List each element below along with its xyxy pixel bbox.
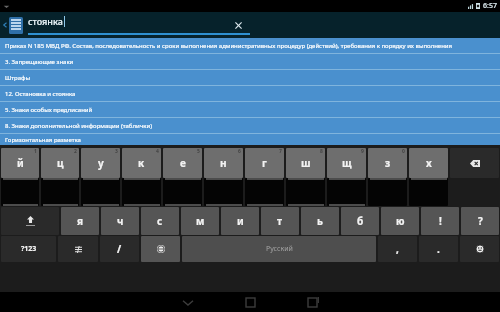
staticText: ц (57, 156, 64, 170)
other: Clear search (233, 20, 244, 31)
button[interactable]: Home (240, 292, 260, 312)
button[interactable]: Change language (141, 236, 180, 262)
button[interactable]: я (61, 207, 99, 235)
staticText: 2 (74, 148, 77, 155)
button[interactable]: 5. Знаки особых предписаний (0, 102, 500, 117)
button[interactable]: App icon (9, 17, 23, 34)
button[interactable]: ч (101, 207, 139, 235)
staticText: 9 (361, 148, 364, 155)
staticText: 3 (115, 148, 118, 155)
button[interactable]: ю (381, 207, 419, 235)
staticText: Приказ N 185 МВД РФ. Состав, последовате… (5, 42, 453, 50)
button[interactable]: б (341, 207, 379, 235)
staticText: стоянка (28, 15, 63, 27)
button[interactable]: ц (41, 148, 79, 178)
button[interactable]: 12. Остановка и стоянка (0, 86, 500, 101)
staticText: 8. Знаки дополнительной информации (табл… (5, 122, 152, 130)
button[interactable]: 3. Запрещающие знаки (0, 54, 500, 69)
button[interactable]: . (419, 236, 458, 262)
button[interactable]: стоянка (28, 15, 250, 35)
staticText: е (180, 156, 186, 170)
button[interactable] (81, 178, 120, 206)
button[interactable]: , (378, 236, 417, 262)
button[interactable]: е (163, 148, 202, 178)
staticText: 6:57 (483, 1, 497, 11)
staticText: к (138, 156, 145, 170)
staticText: з (385, 156, 391, 170)
button[interactable]: г (245, 148, 284, 178)
button[interactable]: с (141, 207, 179, 235)
button[interactable] (286, 178, 325, 206)
button[interactable]: Recent apps (302, 292, 322, 312)
button[interactable]: Shift (1, 207, 59, 235)
button[interactable]: ! (421, 207, 459, 235)
staticText: б (357, 214, 364, 228)
button[interactable]: у (81, 148, 120, 178)
button[interactable]: й (1, 148, 39, 178)
button[interactable] (368, 178, 407, 206)
button[interactable]: Русский (182, 236, 376, 262)
staticText: я (77, 214, 84, 228)
staticText: / (117, 242, 122, 256)
button[interactable]: з (368, 148, 407, 178)
staticText: 3. Запрещающие знаки (5, 58, 74, 66)
button[interactable]: 8. Знаки дополнительной информации (табл… (0, 118, 500, 133)
staticText: й (17, 156, 24, 170)
button[interactable] (122, 178, 161, 206)
button[interactable]: ?123 (1, 236, 56, 262)
button[interactable]: Штрафы (0, 70, 500, 85)
staticText: ? (478, 214, 483, 228)
staticText: и (237, 214, 244, 228)
button[interactable]: Back (178, 292, 198, 312)
button[interactable] (245, 178, 284, 206)
staticText: ч (117, 214, 124, 228)
staticText: с (157, 214, 163, 228)
staticText: . (437, 242, 440, 256)
staticText: 7 (279, 148, 282, 155)
staticText: , (396, 242, 399, 256)
button[interactable] (1, 178, 39, 206)
staticText: х (426, 156, 432, 170)
staticText: у (98, 156, 104, 170)
staticText: 5 (197, 148, 200, 155)
staticText: Русский (266, 244, 293, 254)
staticText: 0 (402, 148, 405, 155)
staticText: т (277, 214, 283, 228)
button[interactable]: ? (461, 207, 499, 235)
staticText: ь (317, 214, 323, 228)
button[interactable] (327, 178, 366, 206)
button[interactable] (41, 178, 79, 206)
staticText: м (196, 214, 205, 228)
button[interactable]: Settings (58, 236, 98, 262)
button[interactable]: Приказ N 185 МВД РФ. Состав, последовате… (0, 38, 500, 53)
staticText: ! (439, 214, 442, 228)
button[interactable]: щ (327, 148, 366, 178)
button[interactable]: т (261, 207, 299, 235)
button[interactable]: к (122, 148, 161, 178)
staticText: 12. Остановка и стоянка (5, 90, 76, 98)
button[interactable] (204, 178, 243, 206)
staticText: н (220, 156, 227, 170)
button[interactable]: Горизонтальная разметка (0, 134, 500, 145)
staticText: ш (301, 156, 311, 170)
staticText: 5. Знаки особых предписаний (5, 106, 93, 114)
staticText: 8 (320, 148, 323, 155)
other: Back (2, 22, 8, 28)
staticText: Штрафы (5, 74, 30, 82)
button[interactable]: и (221, 207, 259, 235)
button[interactable]: / (100, 236, 139, 262)
staticText: ю (396, 214, 405, 228)
button[interactable]: Emoji (460, 236, 499, 262)
button[interactable]: ь (301, 207, 339, 235)
button[interactable] (409, 178, 448, 206)
button[interactable]: н (204, 148, 243, 178)
button[interactable]: ш (286, 148, 325, 178)
staticText: 6 (238, 148, 241, 155)
staticText: г (262, 156, 267, 170)
staticText: 4 (156, 148, 159, 155)
button[interactable] (163, 178, 202, 206)
button[interactable]: х (409, 148, 448, 178)
button[interactable]: Backspace (450, 148, 499, 178)
staticText: 1 (34, 148, 37, 155)
button[interactable]: м (181, 207, 219, 235)
